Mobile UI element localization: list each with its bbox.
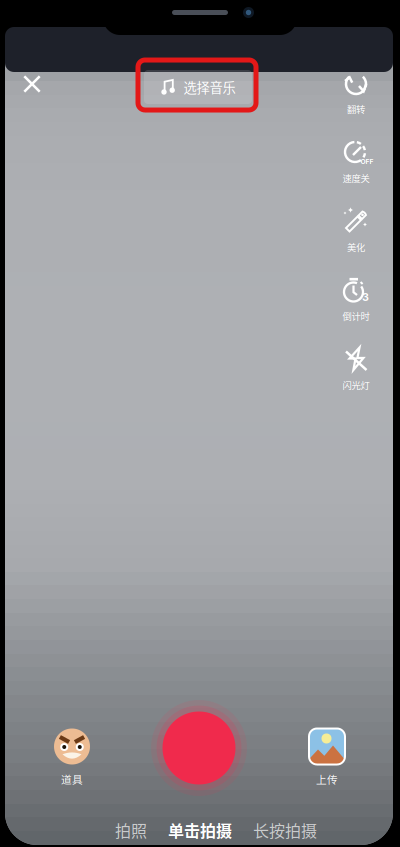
button[interactable]: Record [151, 700, 247, 796]
staticText: 选择音乐 [183, 77, 235, 97]
button[interactable]: OFF [328, 137, 384, 184]
button[interactable]: 单击拍摄 [167, 817, 233, 843]
button[interactable]: 翻转 [328, 68, 384, 115]
button[interactable]: 拍照 [114, 817, 148, 843]
staticText: 倒计时 [342, 309, 369, 323]
button[interactable]: 选择音乐 [144, 70, 252, 104]
staticText: 闪光灯 [342, 378, 369, 392]
staticText: 3 [362, 290, 369, 303]
staticText: OFF [360, 157, 373, 166]
staticText: 道具 [61, 771, 83, 787]
button[interactable]: 美化 [328, 206, 384, 253]
button[interactable]: 道具 [42, 725, 102, 789]
button[interactable]: Close [10, 62, 54, 106]
staticText: 拍照 [115, 818, 147, 842]
staticText: 翻转 [347, 102, 365, 116]
staticText: 上传 [316, 771, 338, 787]
button[interactable]: 长按拍摄 [252, 817, 318, 843]
staticText: 速度关 [342, 171, 369, 185]
staticText: 美化 [347, 240, 365, 254]
staticText: 长按拍摄 [253, 818, 317, 842]
button[interactable]: 上传 [297, 725, 357, 789]
button[interactable]: 闪光灯 [328, 344, 384, 391]
staticText: 单击拍摄 [168, 818, 232, 842]
button[interactable]: 3 [328, 275, 384, 322]
